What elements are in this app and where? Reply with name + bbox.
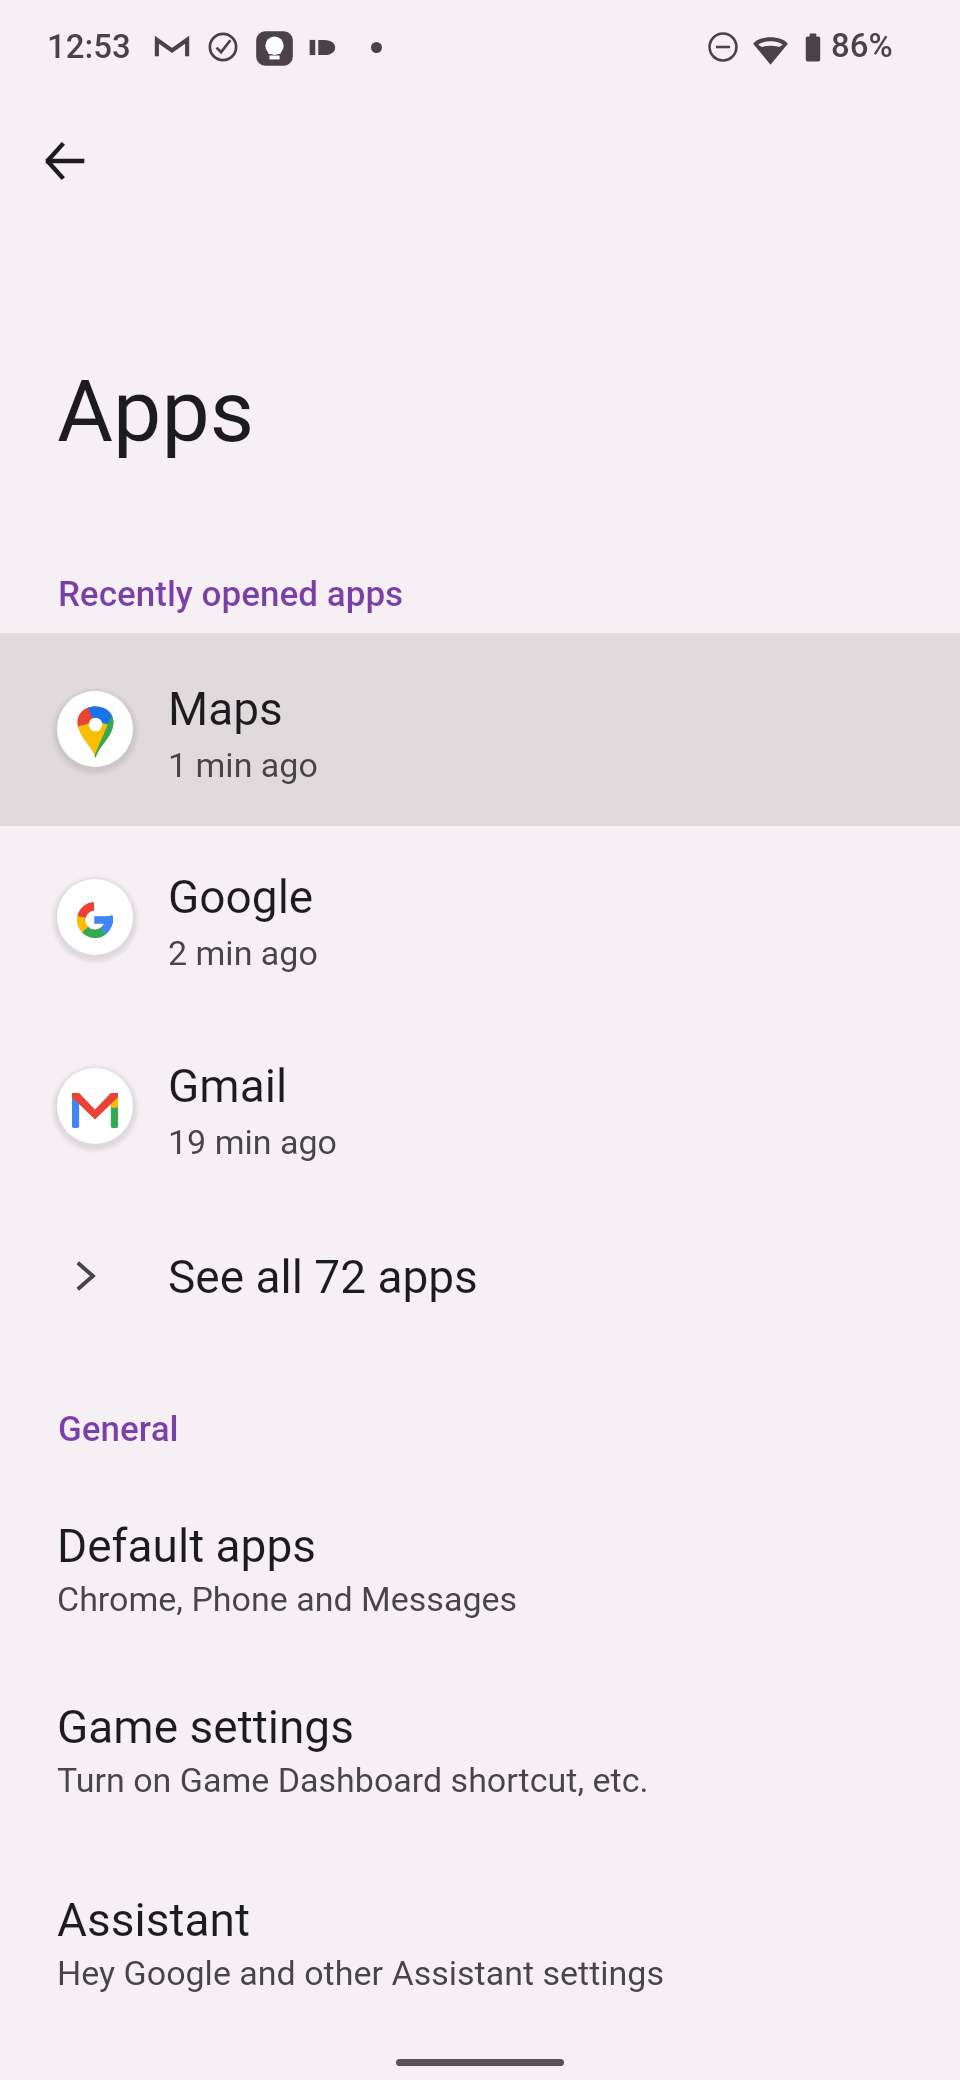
- staticText: 1 min ago: [168, 745, 318, 785]
- staticText: Recently opened apps: [58, 574, 404, 615]
- button[interactable]: Game settings: [0, 1659, 960, 1819]
- button[interactable]: Assistant: [0, 1852, 960, 2012]
- staticText: 2 min ago: [168, 933, 318, 973]
- button[interactable]: Maps: [0, 635, 960, 823]
- button[interactable]: Gmail: [0, 1012, 960, 1200]
- staticText: Chrome, Phone and Messages: [57, 1579, 518, 1619]
- staticText: Default apps: [57, 1519, 317, 1573]
- button[interactable]: See all 72 apps: [0, 1206, 960, 1376]
- staticText: See all 72 apps: [168, 1250, 478, 1304]
- staticText: 86%: [831, 26, 893, 65]
- staticText: Apps: [57, 361, 255, 462]
- staticText: Gmail: [168, 1059, 288, 1113]
- button[interactable]: Back: [20, 116, 110, 206]
- staticText: Assistant: [57, 1893, 250, 1947]
- button[interactable]: Google: [0, 823, 960, 1011]
- staticText: Hey Google and other Assistant settings: [57, 1953, 665, 1993]
- staticText: Google: [168, 870, 314, 924]
- staticText: Game settings: [57, 1700, 354, 1754]
- staticText: Maps: [168, 682, 283, 736]
- staticText: 19 min ago: [168, 1122, 337, 1162]
- button[interactable]: Default apps: [0, 1478, 960, 1638]
- staticText: Turn on Game Dashboard shortcut, etc.: [57, 1760, 649, 1800]
- staticText: General: [58, 1409, 179, 1450]
- staticText: 12:53: [47, 27, 131, 66]
